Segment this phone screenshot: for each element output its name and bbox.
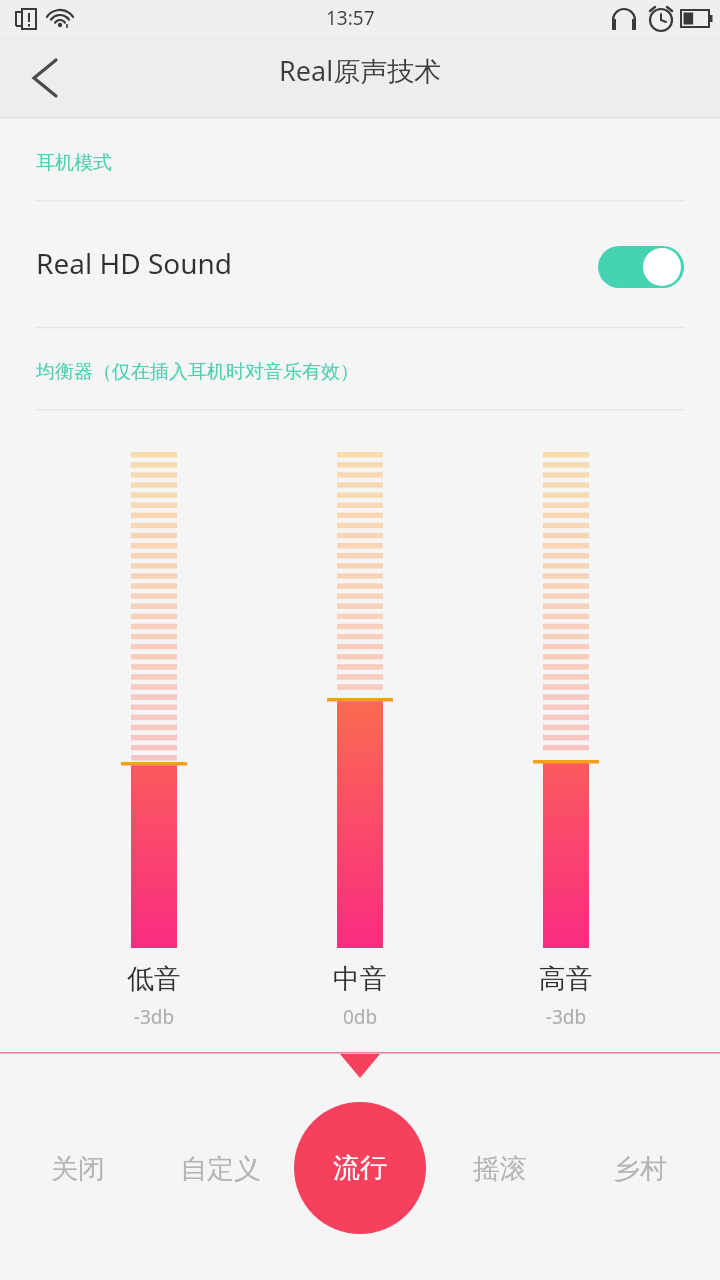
button[interactable]: 低音 xyxy=(94,962,214,1042)
button[interactable]: 流行 xyxy=(294,1102,426,1234)
button[interactable]: 自定义 xyxy=(158,1138,282,1200)
staticText: 关闭 xyxy=(51,1152,105,1186)
staticText: 中音 xyxy=(333,962,387,996)
staticText: 乡村 xyxy=(613,1152,667,1186)
button[interactable]: Real HD Sound xyxy=(0,216,720,316)
button[interactable]: 摇滚 xyxy=(438,1138,562,1200)
staticText: 均衡器（仅在插入耳机时对音乐有效） xyxy=(36,360,359,384)
staticText: Real原声技术 xyxy=(279,52,442,89)
staticText: 低音 xyxy=(127,962,181,996)
button[interactable]: 中音 xyxy=(300,962,420,1042)
button[interactable]: 乡村 xyxy=(578,1138,702,1200)
staticText: 自定义 xyxy=(180,1152,261,1186)
staticText: Real HD Sound xyxy=(36,244,233,282)
staticText: 13:57 xyxy=(326,5,375,31)
staticText: 高音 xyxy=(539,962,593,996)
button[interactable]: Real HD Sound toggle xyxy=(598,246,684,288)
staticText: -3db xyxy=(94,1004,214,1030)
staticText: 流行 xyxy=(333,1151,387,1185)
staticText: 耳机模式 xyxy=(36,151,112,175)
button[interactable]: 高音 xyxy=(506,962,626,1042)
staticText: 0db xyxy=(300,1004,420,1030)
staticText: -3db xyxy=(506,1004,626,1030)
button[interactable]: 关闭 xyxy=(16,1138,140,1200)
staticText: 摇滚 xyxy=(473,1152,527,1186)
